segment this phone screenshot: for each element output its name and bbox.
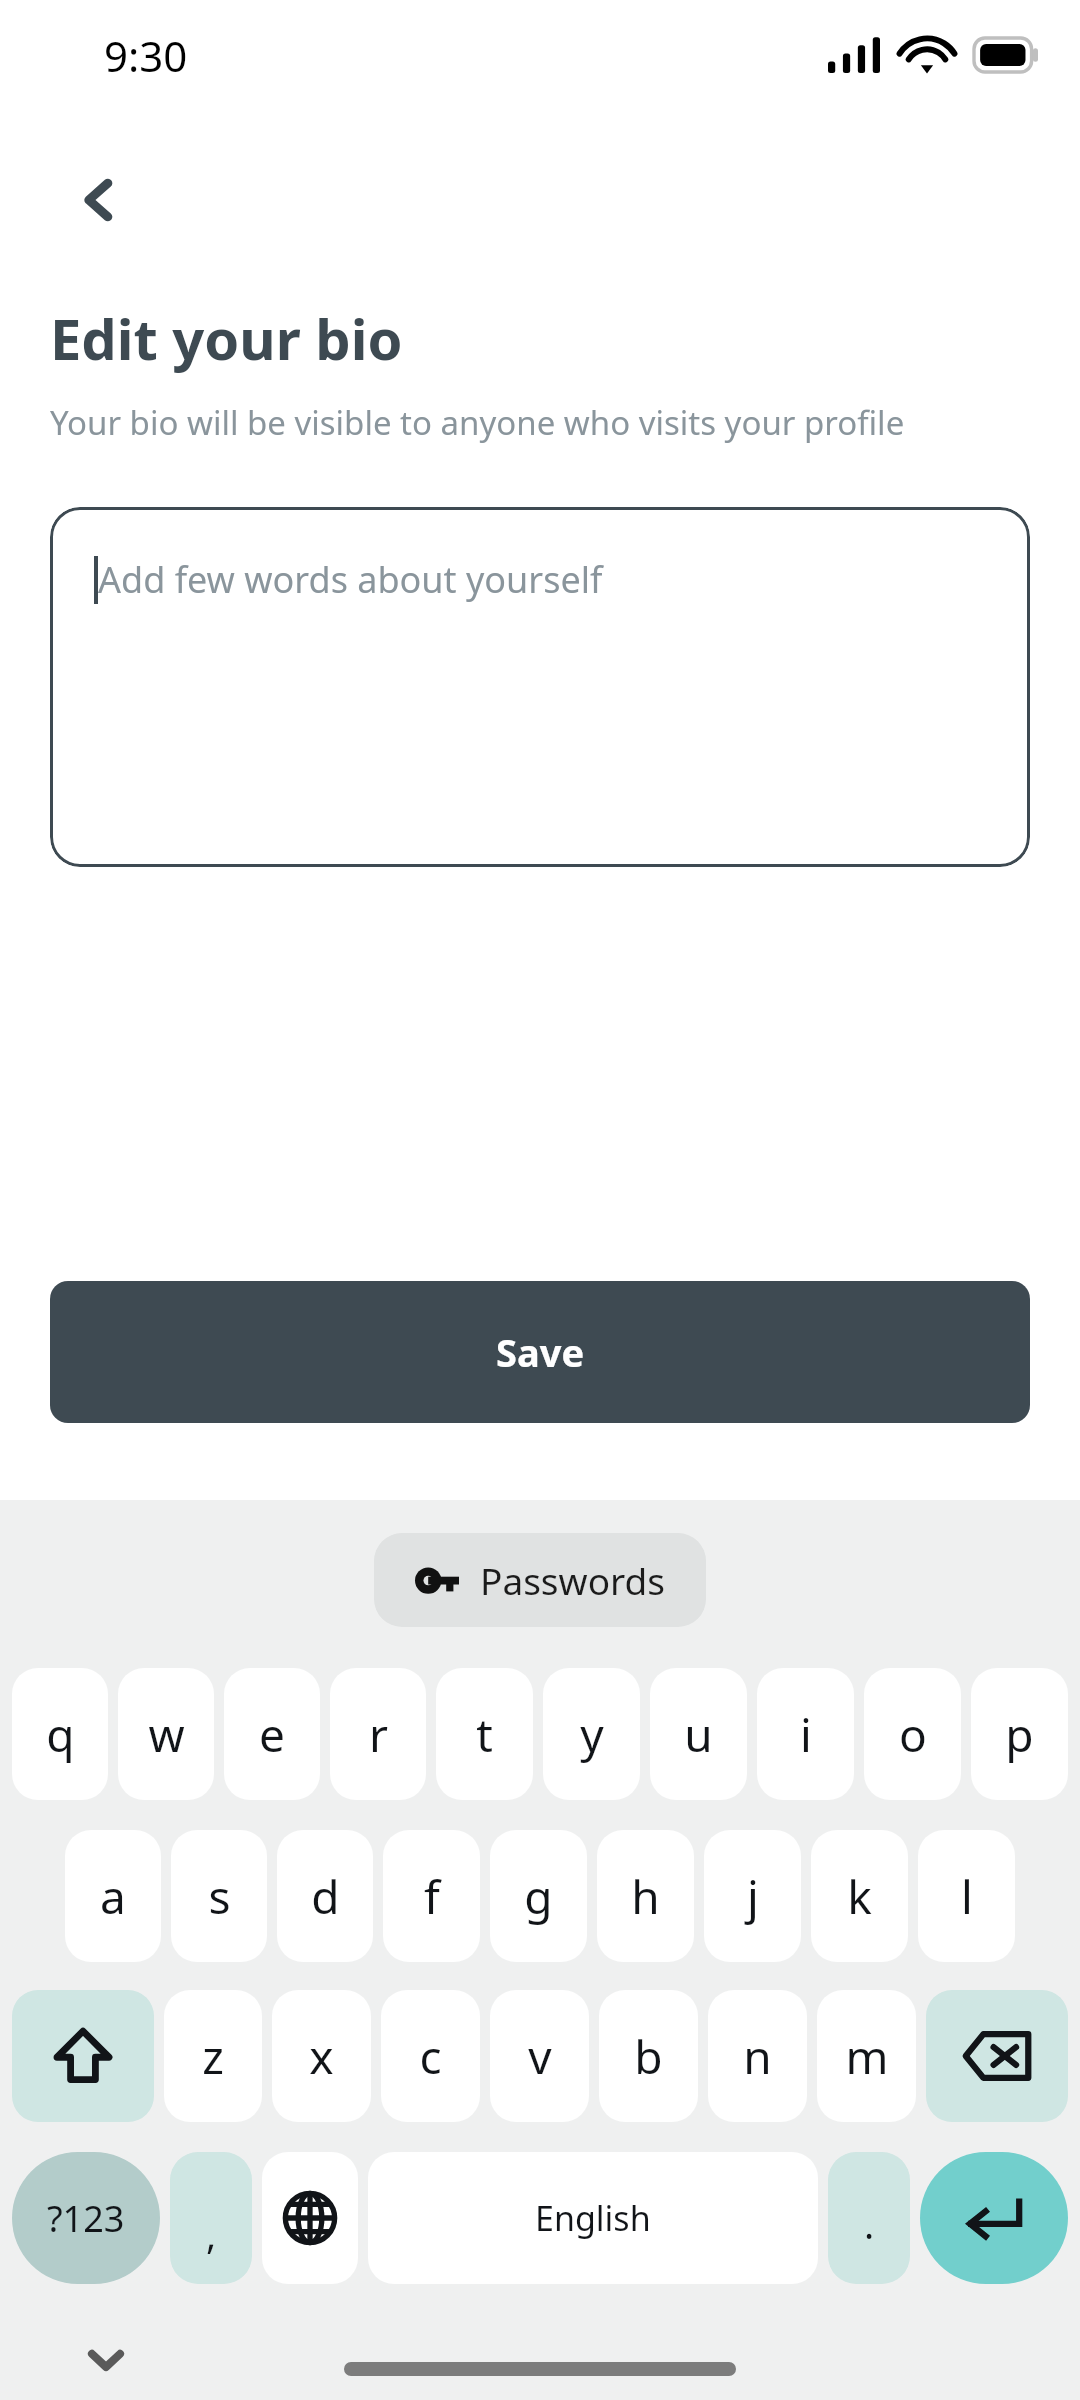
staticText: Add few words about yourself bbox=[98, 555, 603, 604]
button[interactable]: l bbox=[918, 1830, 1015, 1962]
staticText: v bbox=[528, 2025, 552, 2088]
button[interactable]: p bbox=[971, 1668, 1068, 1800]
staticText: Save bbox=[496, 1326, 585, 1378]
button[interactable]: x bbox=[272, 1990, 371, 2122]
button[interactable]: Change language bbox=[262, 2152, 358, 2284]
button[interactable]: g bbox=[490, 1830, 587, 1962]
button[interactable]: Back bbox=[40, 140, 160, 260]
button[interactable]: i bbox=[757, 1668, 854, 1800]
staticText: w bbox=[148, 1703, 185, 1766]
staticText: ?123 bbox=[47, 2194, 125, 2243]
button[interactable]: c bbox=[381, 1990, 480, 2122]
button[interactable]: r bbox=[330, 1668, 426, 1800]
button[interactable]: o bbox=[864, 1668, 961, 1800]
button[interactable]: a bbox=[65, 1830, 161, 1962]
staticText: . bbox=[864, 2198, 875, 2250]
button[interactable]: Backspace bbox=[926, 1990, 1068, 2122]
staticText: l bbox=[961, 1865, 973, 1928]
button[interactable]: y bbox=[543, 1668, 640, 1800]
button[interactable]: n bbox=[708, 1990, 807, 2122]
staticText: q bbox=[46, 1703, 75, 1766]
button[interactable]: Add few words about yourself bbox=[50, 507, 1030, 867]
button[interactable]: j bbox=[704, 1830, 801, 1962]
button[interactable]: m bbox=[817, 1990, 916, 2122]
staticText: f bbox=[424, 1865, 440, 1928]
staticText: c bbox=[419, 2025, 442, 2088]
button[interactable]: Passwords bbox=[374, 1533, 706, 1627]
staticText: English bbox=[535, 2195, 651, 2241]
staticText: Your bio will be visible to anyone who v… bbox=[50, 400, 905, 445]
button[interactable]: b bbox=[599, 1990, 698, 2122]
staticText: u bbox=[684, 1703, 713, 1766]
staticText: Passwords bbox=[480, 1555, 666, 1605]
button[interactable]: English bbox=[368, 2152, 818, 2284]
button[interactable]: v bbox=[490, 1990, 589, 2122]
button[interactable]: q bbox=[12, 1668, 108, 1800]
button[interactable]: u bbox=[650, 1668, 747, 1800]
staticText: k bbox=[847, 1865, 872, 1928]
button[interactable]: f bbox=[383, 1830, 480, 1962]
staticText: a bbox=[100, 1865, 126, 1928]
staticText: z bbox=[202, 2025, 224, 2088]
button[interactable]: d bbox=[277, 1830, 373, 1962]
staticText: h bbox=[631, 1865, 660, 1928]
button[interactable]: z bbox=[164, 1990, 262, 2122]
staticText: j bbox=[747, 1865, 759, 1928]
staticText: d bbox=[311, 1865, 340, 1928]
button[interactable]: Save bbox=[50, 1281, 1030, 1423]
staticText: Edit your bio bbox=[50, 300, 403, 376]
button[interactable]: w bbox=[118, 1668, 214, 1800]
button[interactable]: . bbox=[828, 2152, 910, 2284]
staticText: e bbox=[259, 1703, 285, 1766]
staticText: y bbox=[580, 1703, 604, 1766]
staticText: b bbox=[634, 2025, 663, 2088]
staticText: x bbox=[309, 2025, 334, 2088]
staticText: r bbox=[369, 1703, 388, 1766]
button[interactable]: t bbox=[436, 1668, 533, 1800]
button[interactable]: Enter bbox=[920, 2152, 1068, 2284]
button[interactable]: e bbox=[224, 1668, 320, 1800]
staticText: m bbox=[845, 2025, 889, 2088]
staticText: t bbox=[476, 1703, 493, 1766]
button[interactable]: s bbox=[171, 1830, 267, 1962]
staticText: , bbox=[206, 2208, 217, 2260]
button[interactable]: ?123 bbox=[12, 2152, 160, 2284]
button[interactable]: Shift bbox=[12, 1990, 154, 2122]
button[interactable]: k bbox=[811, 1830, 908, 1962]
button[interactable]: h bbox=[597, 1830, 694, 1962]
staticText: i bbox=[800, 1703, 812, 1766]
staticText: o bbox=[899, 1703, 927, 1766]
staticText: p bbox=[1005, 1703, 1034, 1766]
staticText: g bbox=[524, 1865, 553, 1928]
button[interactable]: Hide keyboard bbox=[60, 2314, 152, 2400]
button[interactable]: , bbox=[170, 2152, 252, 2284]
staticText: s bbox=[208, 1865, 231, 1928]
staticText: n bbox=[743, 2025, 772, 2088]
staticText: 9:30 bbox=[104, 27, 188, 84]
